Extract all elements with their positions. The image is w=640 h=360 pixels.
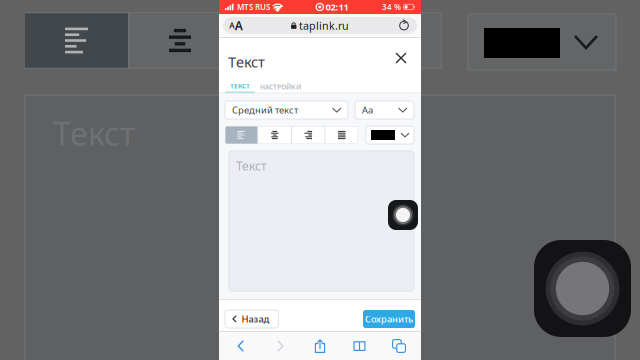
staticText: Текст — [236, 158, 267, 174]
button[interactable]: Средний текст — [225, 101, 348, 119]
staticText: ТЕКСТ — [230, 82, 250, 90]
staticText: Текст — [228, 52, 265, 71]
button[interactable]: Align right — [292, 126, 324, 144]
button[interactable]: ТЕКСТ — [225, 81, 255, 93]
button[interactable]: Bookmarks — [340, 333, 378, 359]
staticText: A — [229, 20, 234, 31]
button[interactable]: Aa — [355, 101, 414, 119]
staticText: НАСТРОЙКИ — [260, 83, 301, 91]
staticText: 02:11 — [325, 1, 348, 13]
button[interactable]: Justify — [325, 126, 358, 144]
button[interactable]: Tabs — [380, 333, 418, 359]
staticText: Aa — [362, 104, 373, 116]
button[interactable]: Page settings — [224, 17, 248, 34]
staticText: 34 % — [382, 2, 401, 12]
staticText: Сохранить — [365, 313, 413, 325]
staticText: A — [235, 17, 243, 33]
button[interactable]: НАСТРОЙКИ — [255, 81, 306, 93]
button[interactable]: Text colour — [366, 126, 414, 144]
button[interactable]: Close — [391, 48, 411, 68]
button[interactable]: Сохранить — [363, 310, 415, 328]
button[interactable]: Align left — [225, 126, 257, 144]
button[interactable]: Back — [222, 333, 260, 359]
staticText: Назад — [241, 313, 269, 325]
button[interactable]: Reload — [392, 17, 416, 34]
button[interactable]: Назад — [225, 310, 278, 328]
button[interactable]: Forward — [261, 333, 299, 359]
staticText: Текст — [53, 112, 135, 154]
button[interactable]: Align center — [258, 126, 291, 144]
staticText: taplink.ru — [299, 18, 349, 33]
staticText: Средний текст — [232, 104, 298, 116]
button[interactable]: Share — [301, 333, 339, 359]
staticText: MTS RUS — [237, 2, 270, 12]
